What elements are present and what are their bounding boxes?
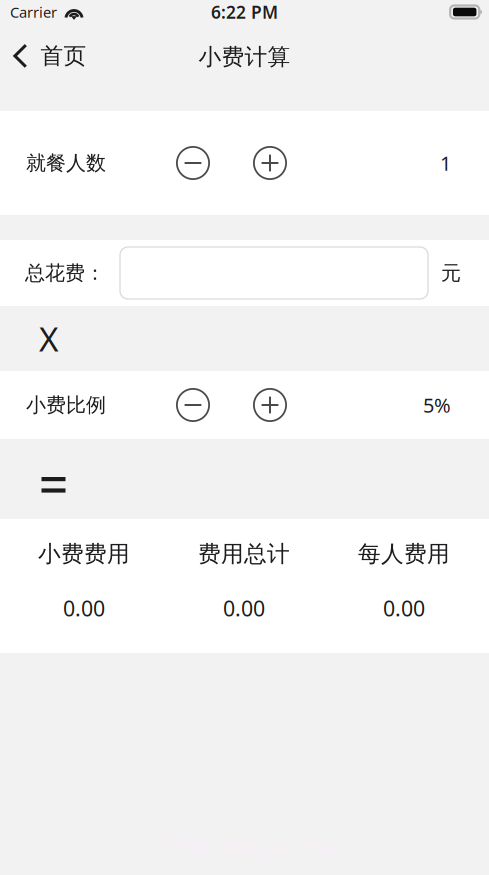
staticText: 费用总计 bbox=[198, 540, 290, 568]
staticText: 首页 bbox=[40, 42, 86, 70]
staticText: 小费比例 bbox=[26, 393, 106, 417]
staticText: 元 bbox=[441, 261, 461, 285]
staticText: 0.00 bbox=[383, 594, 425, 622]
staticText: 0.00 bbox=[63, 594, 105, 622]
staticText: 总花费： bbox=[25, 261, 105, 285]
staticText: 每人费用 bbox=[358, 540, 450, 568]
staticText: X bbox=[39, 316, 59, 361]
staticText: 5% bbox=[423, 392, 451, 418]
staticText: 0.00 bbox=[223, 594, 265, 622]
button[interactable]: Increase 就餐人数 bbox=[253, 146, 287, 180]
staticText: 小费计算 bbox=[198, 43, 290, 71]
staticText: 小费费用 bbox=[38, 540, 130, 568]
staticText: 就餐人数 bbox=[26, 151, 106, 175]
button[interactable]: Decrease 就餐人数 bbox=[176, 146, 210, 180]
staticText: 1 bbox=[440, 150, 451, 176]
button[interactable]: Decrease 小费比例 bbox=[176, 388, 210, 422]
staticText: Carrier bbox=[10, 2, 57, 22]
button[interactable]: Increase 小费比例 bbox=[253, 388, 287, 422]
staticText: 6:22 PM bbox=[211, 0, 278, 23]
button[interactable]: 首页 bbox=[0, 33, 98, 79]
